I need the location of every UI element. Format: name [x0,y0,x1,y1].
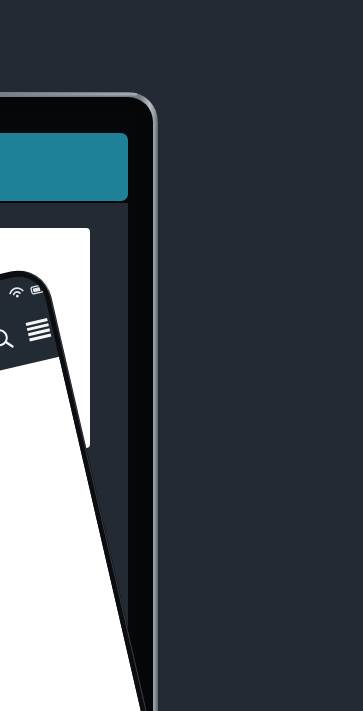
button[interactable]: Responsive website shown on tablet and p… [0,0,363,711]
